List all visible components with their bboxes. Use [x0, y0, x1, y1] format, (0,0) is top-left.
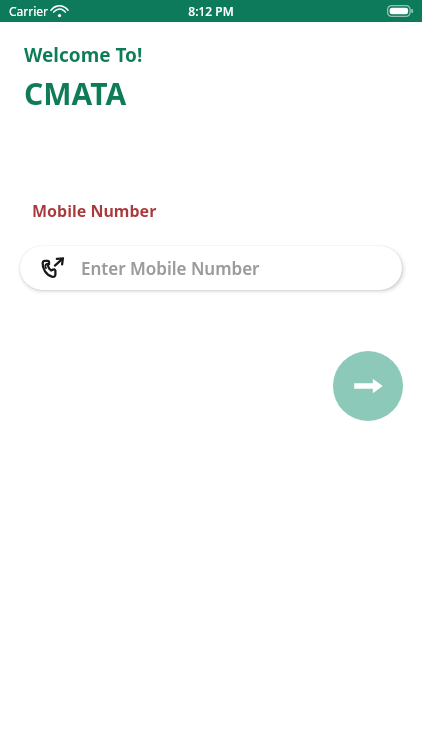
staticText: Mobile Number	[32, 200, 157, 222]
staticText: CMATA	[24, 73, 127, 114]
button[interactable]: Continue	[333, 351, 403, 421]
staticText: Welcome To!	[24, 42, 143, 68]
button[interactable]: Enter Mobile Number	[20, 246, 402, 290]
staticText: Enter Mobile Number	[81, 257, 260, 280]
staticText: Carrier	[9, 3, 49, 19]
staticText: 8:12 PM	[188, 3, 234, 19]
